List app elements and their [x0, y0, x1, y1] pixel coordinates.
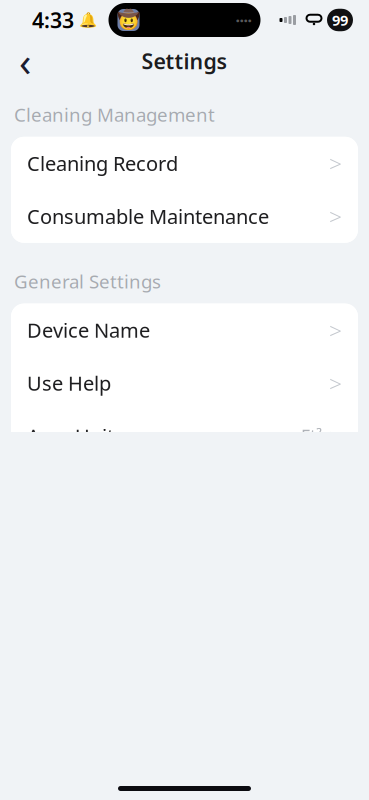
staticText: Settings: [141, 47, 227, 75]
staticText: >: [329, 368, 342, 398]
staticText: Device Name: [27, 317, 150, 343]
staticText: Use Help: [27, 370, 111, 396]
staticText: 🤠: [117, 9, 140, 31]
staticText: Ft²: [301, 425, 322, 448]
staticText: 99: [332, 10, 348, 30]
staticText: ‹: [19, 34, 31, 87]
button[interactable]: Consumable Maintenance: [11, 190, 358, 243]
staticText: General Settings: [14, 269, 161, 294]
staticText: 4:33: [32, 6, 74, 34]
staticText: www.beatbot.com: [227, 772, 338, 800]
staticText: Cleaning Record: [27, 150, 178, 177]
staticText: >: [329, 148, 342, 178]
button[interactable]: www.beatbot.com: [11, 776, 358, 800]
staticText: >: [329, 315, 342, 345]
staticText: Consumable Maintenance: [27, 203, 269, 230]
staticText: >: [329, 201, 342, 231]
staticText: 🔔: [79, 12, 97, 28]
button[interactable]: Back: [6, 44, 44, 78]
button[interactable]: Cleaning Record: [11, 137, 358, 190]
staticText: ····: [235, 9, 251, 31]
button[interactable]: Device Name: [11, 304, 358, 357]
button[interactable]: Use Help: [11, 357, 358, 410]
staticText: >: [329, 421, 342, 451]
button[interactable]: Area Unit: [11, 410, 358, 463]
staticText: Area Unit: [27, 423, 114, 449]
staticText: Cleaning Management: [14, 102, 215, 127]
